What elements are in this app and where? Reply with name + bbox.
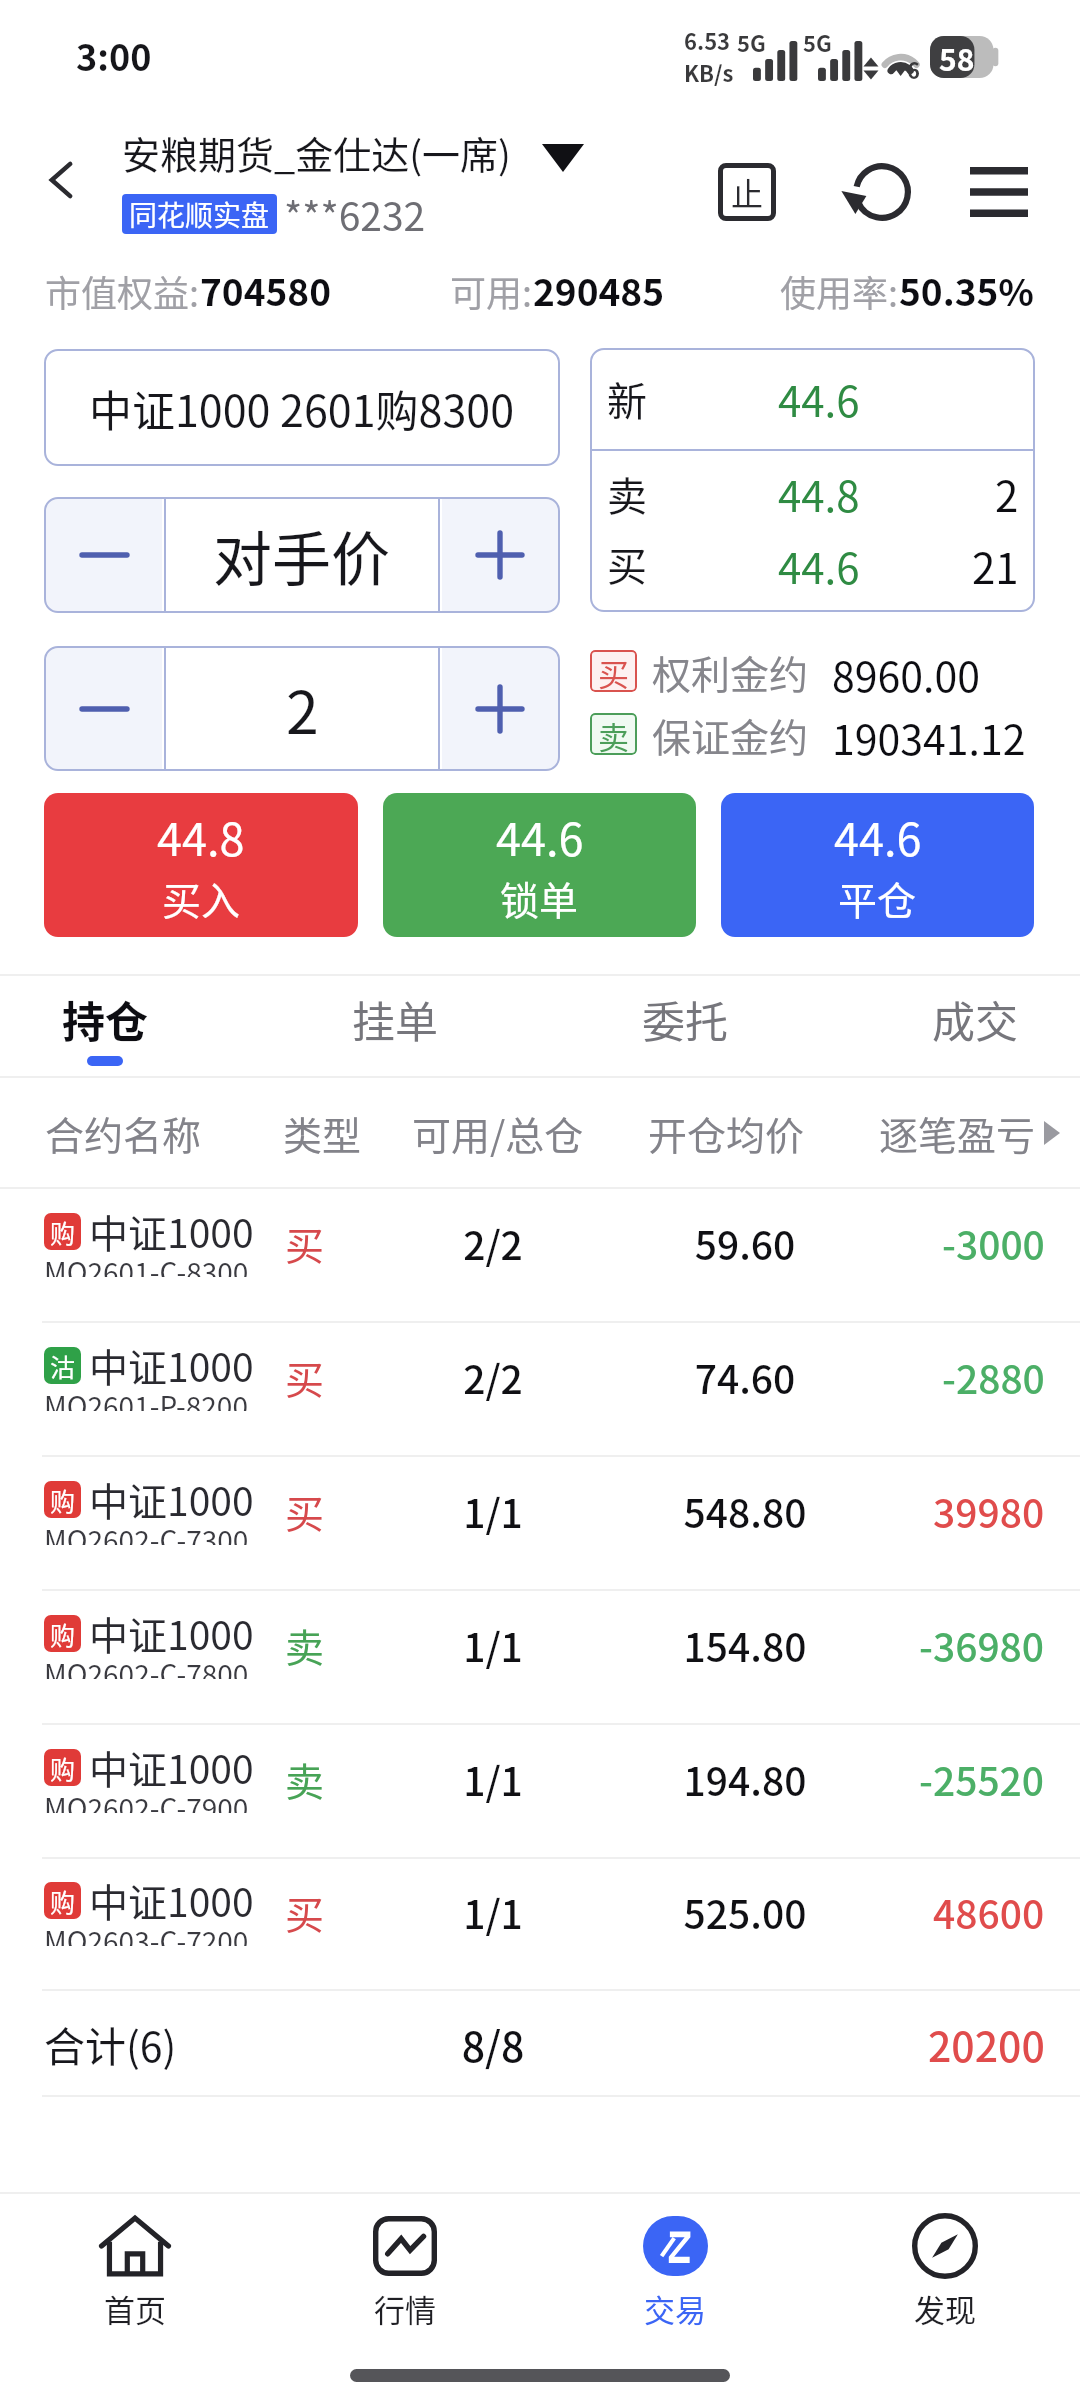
- staticText: 48600: [933, 1884, 1045, 1940]
- button[interactable]: 成交: [860, 976, 1080, 1076]
- button[interactable]: 购: [0, 1457, 1080, 1589]
- staticText: 卖: [607, 465, 647, 523]
- button[interactable]: Refresh: [827, 110, 937, 250]
- staticText: 6.53: [684, 24, 731, 56]
- staticText: 买: [285, 1884, 325, 1940]
- staticText: 5G: [737, 26, 766, 58]
- button[interactable]: 新: [590, 348, 1035, 612]
- button[interactable]: 首页: [0, 2191, 270, 2351]
- staticText: 2/2: [393, 1215, 593, 1271]
- staticText: 卖: [598, 713, 629, 755]
- button[interactable]: 购: [0, 1591, 1080, 1723]
- button[interactable]: 挂单: [280, 976, 510, 1076]
- staticText: 安粮期货_金仕达(一席): [122, 125, 511, 180]
- staticText: 1/1: [393, 1483, 593, 1539]
- staticText: 20200: [928, 2014, 1045, 2073]
- button[interactable]: 交易: [540, 2191, 810, 2351]
- staticText: 平仓: [838, 870, 917, 926]
- staticText: MO2601-P-8200: [44, 1385, 248, 1411]
- staticText: 5G: [803, 26, 832, 58]
- button[interactable]: 44.6: [721, 793, 1034, 937]
- staticText: 1/1: [393, 1617, 593, 1673]
- staticText: 44.6: [834, 804, 922, 869]
- staticText: 购: [50, 1750, 76, 1786]
- staticText: 44.6: [778, 368, 860, 429]
- staticText: 保证金约: [652, 707, 809, 760]
- button[interactable]: Decrease: [46, 648, 162, 769]
- staticText: 持仓: [62, 988, 148, 1050]
- staticText: MO2602-C-7800: [44, 1653, 249, 1679]
- staticText: -3000: [942, 1215, 1045, 1271]
- staticText: 使用率:: [780, 265, 899, 317]
- staticText: 发现: [914, 2286, 976, 2331]
- staticText: 卖: [285, 1617, 325, 1673]
- staticText: 8960.00: [832, 644, 980, 697]
- staticText: 中证1000: [89, 1471, 254, 1527]
- staticText: -36980: [919, 1617, 1045, 1673]
- button[interactable]: 委托: [570, 976, 800, 1076]
- staticText: 买: [285, 1349, 325, 1405]
- staticText: 2: [286, 666, 319, 751]
- staticText: 合计(6): [44, 2014, 177, 2073]
- staticText: 锁单: [500, 870, 579, 926]
- button[interactable]: 持仓: [0, 976, 220, 1076]
- button[interactable]: 购: [0, 1859, 1080, 1989]
- button[interactable]: 购: [0, 1189, 1080, 1321]
- button[interactable]: 购: [0, 1725, 1080, 1857]
- staticText: 成交: [932, 988, 1018, 1050]
- staticText: 59.60: [615, 1215, 875, 1271]
- button[interactable]: Increase: [442, 499, 558, 611]
- staticText: 可用:: [450, 265, 533, 317]
- button[interactable]: 44.8: [44, 793, 358, 937]
- staticText: 行情: [374, 2286, 436, 2331]
- staticText: 704580: [200, 263, 331, 317]
- staticText: 中证1000 2601购8300: [89, 377, 515, 439]
- button[interactable]: Back: [0, 110, 122, 250]
- staticText: 39980: [933, 1483, 1045, 1539]
- button[interactable]: Increase: [442, 648, 558, 769]
- staticText: ***6232: [284, 186, 426, 242]
- staticText: 74.60: [615, 1349, 875, 1405]
- button[interactable]: Decrease: [46, 499, 162, 611]
- staticText: 挂单: [352, 988, 438, 1050]
- staticText: 买: [607, 535, 647, 585]
- button[interactable]: Risk control: [698, 110, 796, 250]
- staticText: 买: [285, 1483, 325, 1539]
- staticText: 1/1: [393, 1884, 593, 1940]
- button[interactable]: 2: [166, 646, 438, 771]
- staticText: 同花顺实盘: [129, 194, 270, 234]
- staticText: 2/2: [393, 1349, 593, 1405]
- staticText: MO2602-C-7900: [44, 1787, 249, 1813]
- staticText: 中证1000: [89, 1605, 254, 1661]
- button[interactable]: 中证1000 2601购8300: [44, 349, 560, 466]
- staticText: 50.35%: [899, 263, 1034, 317]
- button[interactable]: 合计(6): [0, 1991, 1080, 2095]
- staticText: 8/8: [393, 2014, 593, 2073]
- staticText: 买: [285, 1215, 325, 1271]
- staticText: 6: [907, 53, 920, 85]
- button[interactable]: 行情: [270, 2191, 540, 2351]
- button[interactable]: 发现: [810, 2191, 1080, 2351]
- staticText: 权利金约: [652, 644, 809, 697]
- staticText: MO2603-C-7200: [44, 1920, 249, 1946]
- staticText: 3:00: [76, 29, 152, 81]
- staticText: 交易: [644, 2286, 706, 2331]
- staticText: 548.80: [615, 1483, 875, 1539]
- staticText: 44.6: [778, 535, 860, 585]
- staticText: 44.8: [778, 463, 860, 524]
- staticText: 58: [939, 36, 975, 78]
- staticText: 2: [995, 463, 1019, 524]
- staticText: -25520: [919, 1751, 1045, 1807]
- staticText: 1/1: [393, 1751, 593, 1807]
- button[interactable]: Menu: [944, 110, 1054, 250]
- button[interactable]: 沽: [0, 1323, 1080, 1455]
- button[interactable]: 44.6: [383, 793, 696, 937]
- button[interactable]: 对手价: [166, 497, 438, 613]
- staticText: 类型: [283, 1105, 362, 1161]
- staticText: KB/s: [684, 56, 734, 88]
- staticText: MO2602-C-7300: [44, 1519, 249, 1545]
- staticText: 194.80: [615, 1751, 875, 1807]
- staticText: 止: [731, 169, 764, 215]
- staticText: 290485: [533, 263, 664, 317]
- staticText: 中证1000: [89, 1739, 254, 1795]
